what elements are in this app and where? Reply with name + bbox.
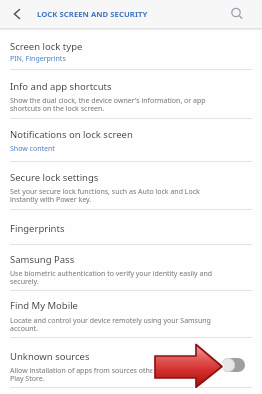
staticText: Allow installation of apps from sources … — [10, 366, 187, 383]
button[interactable]: Find My Mobile — [0, 291, 262, 338]
button[interactable]: Notifications on lock screen — [0, 119, 262, 162]
button[interactable] — [9, 6, 25, 22]
staticText: Samsung Pass — [10, 253, 75, 266]
button[interactable] — [229, 6, 245, 22]
staticText: Unknown sources — [10, 350, 90, 363]
staticText: Screen lock type — [10, 40, 83, 53]
staticText: Notifications on lock screen — [10, 128, 133, 141]
staticText: Use biometric authentication to verify y… — [10, 269, 213, 286]
staticText: Show the dual clock, the device owner's … — [10, 96, 206, 113]
staticText: LOCK SCREEN AND SECURITY — [37, 9, 148, 19]
button[interactable]: Unknown sources — [0, 338, 262, 388]
button[interactable]: Screen lock type — [0, 31, 262, 70]
button[interactable]: Secure lock settings — [0, 162, 262, 210]
staticText: Set your secure lock functions, such as … — [10, 187, 200, 204]
button[interactable]: Info and app shortcuts — [0, 70, 262, 119]
button[interactable]: Samsung Pass — [0, 245, 262, 291]
staticText: Fingerprints — [10, 222, 65, 235]
staticText: Locate and control your device remotely … — [10, 316, 211, 333]
staticText: PIN, Fingerprints — [10, 54, 66, 64]
staticText: Secure lock settings — [10, 171, 99, 184]
staticText: Info and app shortcuts — [10, 80, 112, 93]
button[interactable]: Fingerprints — [0, 210, 262, 245]
staticText: Find My Mobile — [10, 299, 78, 312]
staticText: Show content — [10, 144, 55, 154]
button[interactable] — [222, 358, 245, 372]
